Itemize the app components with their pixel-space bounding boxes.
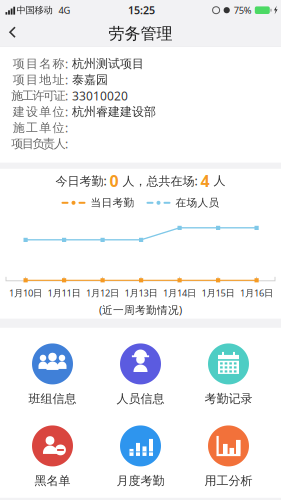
staticText: 人 xyxy=(54,136,66,151)
staticText: 0 xyxy=(109,170,118,191)
staticText: 中国移动 xyxy=(16,4,52,16)
staticText: 当日考勤 xyxy=(90,196,134,209)
staticText: 班组信息 xyxy=(28,391,76,406)
staticText: 证 xyxy=(54,88,66,103)
staticText: 址 xyxy=(52,72,64,87)
staticText: 位 xyxy=(52,120,64,135)
staticText: : xyxy=(65,72,68,88)
staticText: 责 xyxy=(43,136,55,151)
button[interactable]: 月度考勤 xyxy=(96,421,184,492)
staticText: 名 xyxy=(39,56,51,71)
staticText: 在场人员 xyxy=(175,196,219,209)
button[interactable]: 班组信息 xyxy=(8,339,96,410)
staticText: 1月11日 xyxy=(47,287,80,299)
staticText: 1月14日 xyxy=(163,287,196,299)
staticText: 1月16日 xyxy=(240,287,273,299)
staticText: 工 xyxy=(26,120,38,135)
staticText: 33010020 xyxy=(72,88,128,104)
staticText: 负 xyxy=(32,136,44,151)
staticText: 用工分析 xyxy=(204,473,252,488)
staticText: (近一周考勤情况) xyxy=(99,303,182,317)
staticText: 15:25 xyxy=(128,3,155,17)
staticText: 今日考勤: xyxy=(55,173,109,189)
staticText: 地 xyxy=(39,72,51,87)
staticText: 泰嘉园 xyxy=(72,72,108,87)
staticText: 黑名单 xyxy=(34,473,70,488)
staticText: 目 xyxy=(26,56,38,71)
staticText: 建 xyxy=(13,104,25,119)
staticText: 位 xyxy=(52,104,64,119)
button[interactable]: 黑名单 xyxy=(8,421,96,492)
staticText: 1月13日 xyxy=(124,287,157,299)
staticText: 人 xyxy=(209,173,225,188)
staticText: 1月12日 xyxy=(86,287,119,299)
staticText: 目 xyxy=(22,136,34,151)
staticText: 单 xyxy=(39,104,51,119)
staticText: 工 xyxy=(22,88,34,103)
staticText: 1月10日 xyxy=(9,287,42,299)
staticText: 月度考勤 xyxy=(116,473,164,488)
staticText: : xyxy=(65,136,68,152)
staticText: 4 xyxy=(200,170,209,191)
staticText: 人，总共在场: xyxy=(118,173,200,189)
staticText: 人员信息 xyxy=(116,391,164,406)
staticText: 项 xyxy=(13,56,25,71)
staticText: : xyxy=(65,120,68,136)
staticText: 可 xyxy=(43,88,55,103)
button[interactable]: 人员信息 xyxy=(96,339,184,410)
staticText: 许 xyxy=(32,88,44,103)
staticText: 杭州睿建建设部 xyxy=(72,104,156,119)
button[interactable]: 用工分析 xyxy=(184,421,272,492)
staticText: 1月15日 xyxy=(201,287,234,299)
staticText: 施 xyxy=(11,88,23,103)
staticText: : xyxy=(65,56,68,72)
staticText: 项 xyxy=(11,136,23,151)
staticText: 考勤记录 xyxy=(204,391,252,406)
staticText: 单 xyxy=(39,120,51,135)
staticText: 项 xyxy=(13,72,25,87)
staticText: 称 xyxy=(52,56,64,71)
staticText: 75% xyxy=(234,4,252,16)
staticText: 杭州测试项目 xyxy=(72,56,144,71)
staticText: : xyxy=(65,104,68,120)
button[interactable]: Back xyxy=(0,18,26,46)
staticText: 4G xyxy=(58,4,70,16)
staticText: : xyxy=(65,88,68,104)
button[interactable]: 考勤记录 xyxy=(184,339,272,410)
staticText: 目 xyxy=(26,72,38,87)
staticText: 设 xyxy=(26,104,38,119)
staticText: 施 xyxy=(13,120,25,135)
staticText: 劳务管理 xyxy=(108,24,172,44)
